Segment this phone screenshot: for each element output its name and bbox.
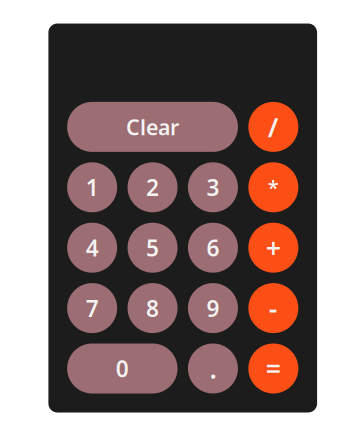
staticText: 7 (86, 293, 99, 323)
button[interactable]: Multiply (248, 162, 298, 212)
staticText: / (268, 109, 279, 145)
staticText: 8 (146, 293, 159, 323)
staticText: 9 (206, 293, 219, 323)
staticText: 5 (146, 233, 159, 263)
button[interactable]: Add (248, 223, 298, 273)
staticText: 2 (146, 172, 159, 202)
button[interactable]: Subtract (248, 283, 298, 333)
staticText: * (268, 174, 279, 201)
staticText: 4 (86, 233, 99, 263)
button[interactable]: 8 (127, 283, 177, 333)
staticText: 6 (206, 233, 219, 263)
staticText: 0 (116, 353, 129, 383)
staticText: + (266, 230, 281, 265)
staticText: 3 (206, 172, 219, 202)
button[interactable]: 9 (188, 283, 238, 333)
button[interactable]: 1 (67, 162, 117, 212)
button[interactable]: 3 (188, 162, 238, 212)
button[interactable]: Clear (67, 102, 238, 152)
button[interactable]: Decimal point (188, 343, 238, 393)
button[interactable]: Equals (248, 343, 298, 393)
button[interactable]: Divide (248, 102, 298, 152)
button[interactable]: 7 (67, 283, 117, 333)
staticText: . (209, 351, 216, 386)
staticText: - (269, 290, 278, 326)
staticText: = (266, 351, 281, 386)
staticText: 1 (86, 172, 99, 202)
staticText: Clear (126, 113, 179, 141)
button[interactable]: 2 (127, 162, 177, 212)
button[interactable]: 4 (67, 223, 117, 273)
button[interactable]: 6 (188, 223, 238, 273)
button[interactable]: 5 (127, 223, 177, 273)
button[interactable]: 0 (67, 343, 177, 393)
